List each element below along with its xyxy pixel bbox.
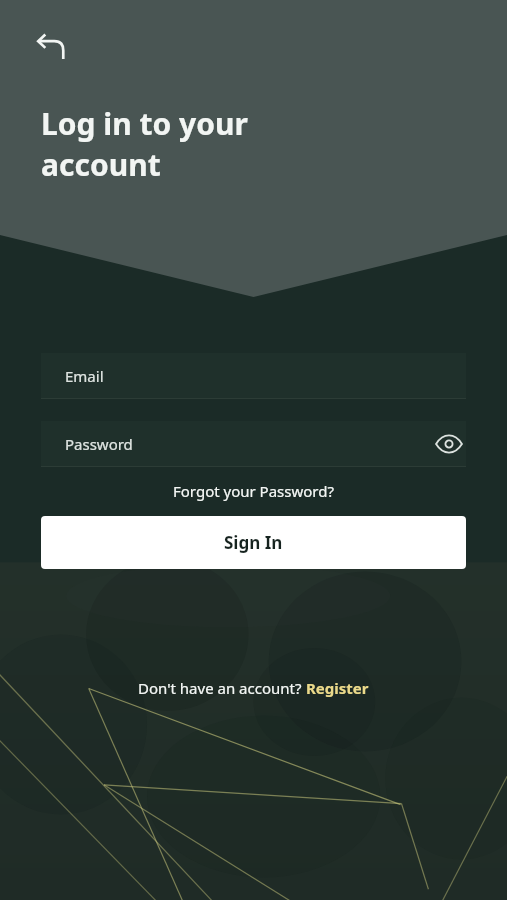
button[interactable]: Sign In (41, 516, 466, 569)
staticText: Register (306, 678, 369, 698)
button[interactable]: Email (41, 353, 466, 399)
button[interactable]: Show password (432, 427, 466, 461)
staticText: Log in to your (41, 103, 248, 144)
button[interactable]: Don't have an account? (130, 674, 377, 702)
staticText: Password (65, 434, 133, 454)
button[interactable]: Forgot your Password? (167, 478, 340, 504)
staticText: Don't have an account? (138, 678, 306, 698)
staticText: Sign In (224, 531, 283, 554)
staticText: Forgot your Password? (173, 481, 334, 501)
staticText: Email (65, 366, 104, 386)
button[interactable]: Back (29, 26, 75, 72)
button[interactable]: Password (41, 421, 466, 467)
staticText: account (41, 144, 161, 185)
